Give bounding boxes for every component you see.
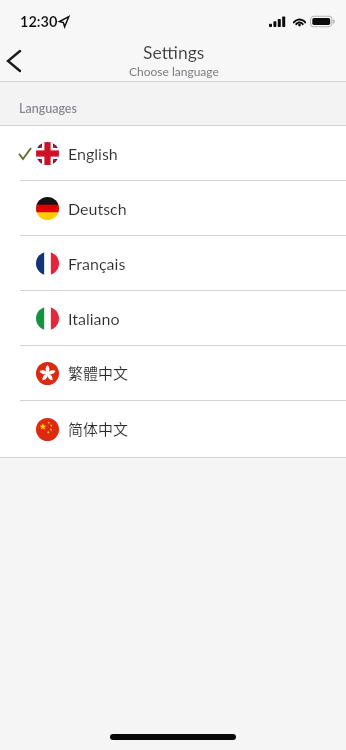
staticText: English <box>68 144 118 163</box>
staticText: Deutsch <box>68 199 127 218</box>
button[interactable]: English <box>0 126 346 180</box>
staticText: Italiano <box>68 309 120 328</box>
staticText: Choose language <box>129 64 219 78</box>
button[interactable]: Italiano <box>0 291 346 345</box>
staticText: 简体中文 <box>68 418 129 440</box>
staticText: 12:30 <box>20 13 58 30</box>
button[interactable]: 简体中文 <box>0 401 346 457</box>
staticText: Settings <box>143 42 205 63</box>
button[interactable]: Deutsch <box>0 181 346 235</box>
button[interactable]: Français <box>0 236 346 290</box>
button[interactable]: Back <box>0 39 44 83</box>
staticText: 繁體中文 <box>68 362 129 384</box>
staticText: Languages <box>19 101 77 116</box>
staticText: Français <box>68 254 126 273</box>
button[interactable]: 繁體中文 <box>0 346 346 400</box>
